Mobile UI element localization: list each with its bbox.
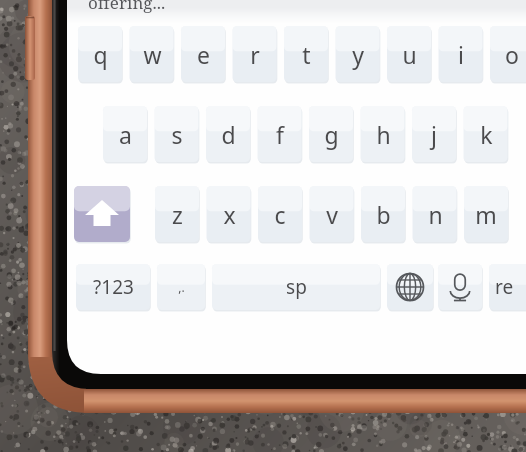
button[interactable]: y	[336, 26, 380, 82]
button[interactable]: c	[258, 186, 302, 242]
button[interactable]: sp	[212, 264, 380, 310]
button[interactable]: o	[490, 26, 526, 82]
button[interactable]: w	[130, 26, 174, 82]
button[interactable]: offering...	[88, 0, 166, 14]
button[interactable]: g	[309, 106, 353, 162]
button[interactable]: ?123	[76, 264, 150, 310]
button[interactable]: a	[103, 106, 147, 162]
button[interactable]: Volume button	[25, 16, 35, 80]
staticText: a	[119, 119, 132, 150]
staticText: d	[221, 119, 236, 150]
button[interactable]: s	[155, 106, 199, 162]
button[interactable]: x	[207, 186, 251, 242]
button[interactable]: ,.	[157, 264, 205, 310]
staticText: ?123	[93, 274, 134, 300]
staticText: m	[475, 199, 497, 230]
button[interactable]: h	[361, 106, 405, 162]
staticText: offering...	[88, 0, 166, 14]
button[interactable]: m	[464, 186, 508, 242]
staticText: w	[143, 39, 162, 70]
staticText: e	[197, 39, 210, 70]
button[interactable]: b	[361, 186, 405, 242]
staticText: n	[428, 199, 443, 230]
staticText: sp	[286, 274, 307, 300]
staticText: ,.	[178, 279, 185, 295]
staticText: f	[276, 119, 284, 150]
button[interactable]: u	[387, 26, 431, 82]
button[interactable]: f	[258, 106, 302, 162]
button[interactable]: n	[413, 186, 457, 242]
staticText: c	[274, 199, 286, 230]
button[interactable]: z	[155, 186, 199, 242]
button[interactable]: Voice input	[438, 264, 482, 310]
staticText: j	[431, 119, 437, 150]
staticText: x	[223, 199, 236, 230]
button[interactable]: q	[78, 26, 122, 82]
staticText: h	[376, 119, 391, 150]
button[interactable]: k	[464, 106, 508, 162]
staticText: b	[376, 199, 391, 230]
button[interactable]: e	[181, 26, 225, 82]
staticText: s	[171, 119, 183, 150]
button[interactable]: v	[310, 186, 354, 242]
staticText: i	[458, 39, 464, 70]
staticText: q	[93, 39, 108, 70]
button[interactable]: j	[412, 106, 456, 162]
button[interactable]: d	[206, 106, 250, 162]
button[interactable]: t	[284, 26, 328, 82]
staticText: k	[480, 119, 493, 150]
staticText: re	[495, 274, 514, 300]
staticText: o	[505, 39, 519, 70]
staticText: z	[172, 199, 183, 230]
button[interactable]: Change keyboard	[387, 264, 433, 310]
staticText: v	[326, 199, 338, 230]
button[interactable]: r	[233, 26, 277, 82]
staticText: t	[302, 39, 311, 70]
button[interactable]: i	[439, 26, 483, 82]
staticText: g	[324, 119, 339, 150]
staticText: r	[250, 39, 260, 70]
staticText: y	[352, 39, 364, 70]
button[interactable]: Shift	[74, 186, 130, 242]
staticText: u	[402, 39, 417, 70]
button[interactable]: re	[489, 264, 526, 310]
